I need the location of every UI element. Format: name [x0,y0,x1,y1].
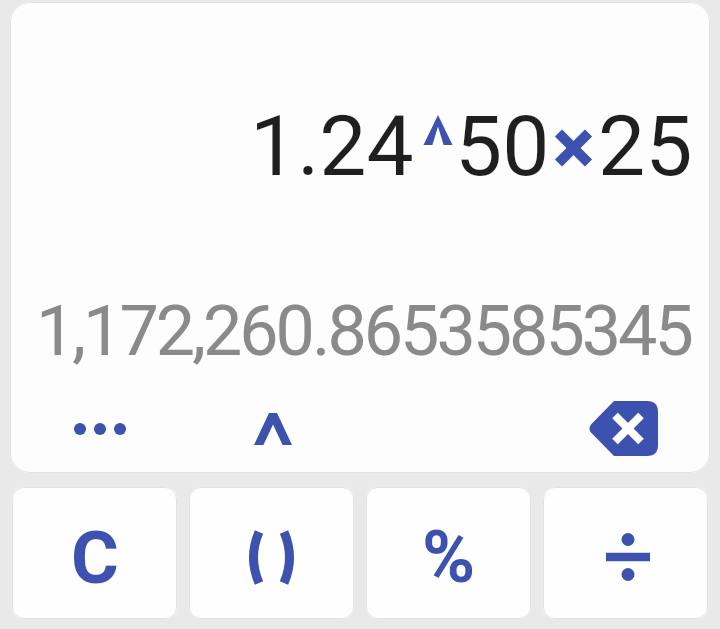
button[interactable] [62,407,138,451]
button[interactable]: C [12,487,177,619]
staticText: 25 [598,97,693,195]
staticText: C [71,515,119,601]
staticText: 1.24 [250,97,414,195]
button[interactable] [189,487,354,619]
button[interactable] [543,487,708,619]
button[interactable]: % [366,487,531,619]
button[interactable] [582,395,664,461]
button[interactable] [246,407,300,451]
staticText: 50 [455,97,550,195]
staticText: 1,172,260.8653585345 [36,290,691,372]
staticText: % [422,515,476,599]
